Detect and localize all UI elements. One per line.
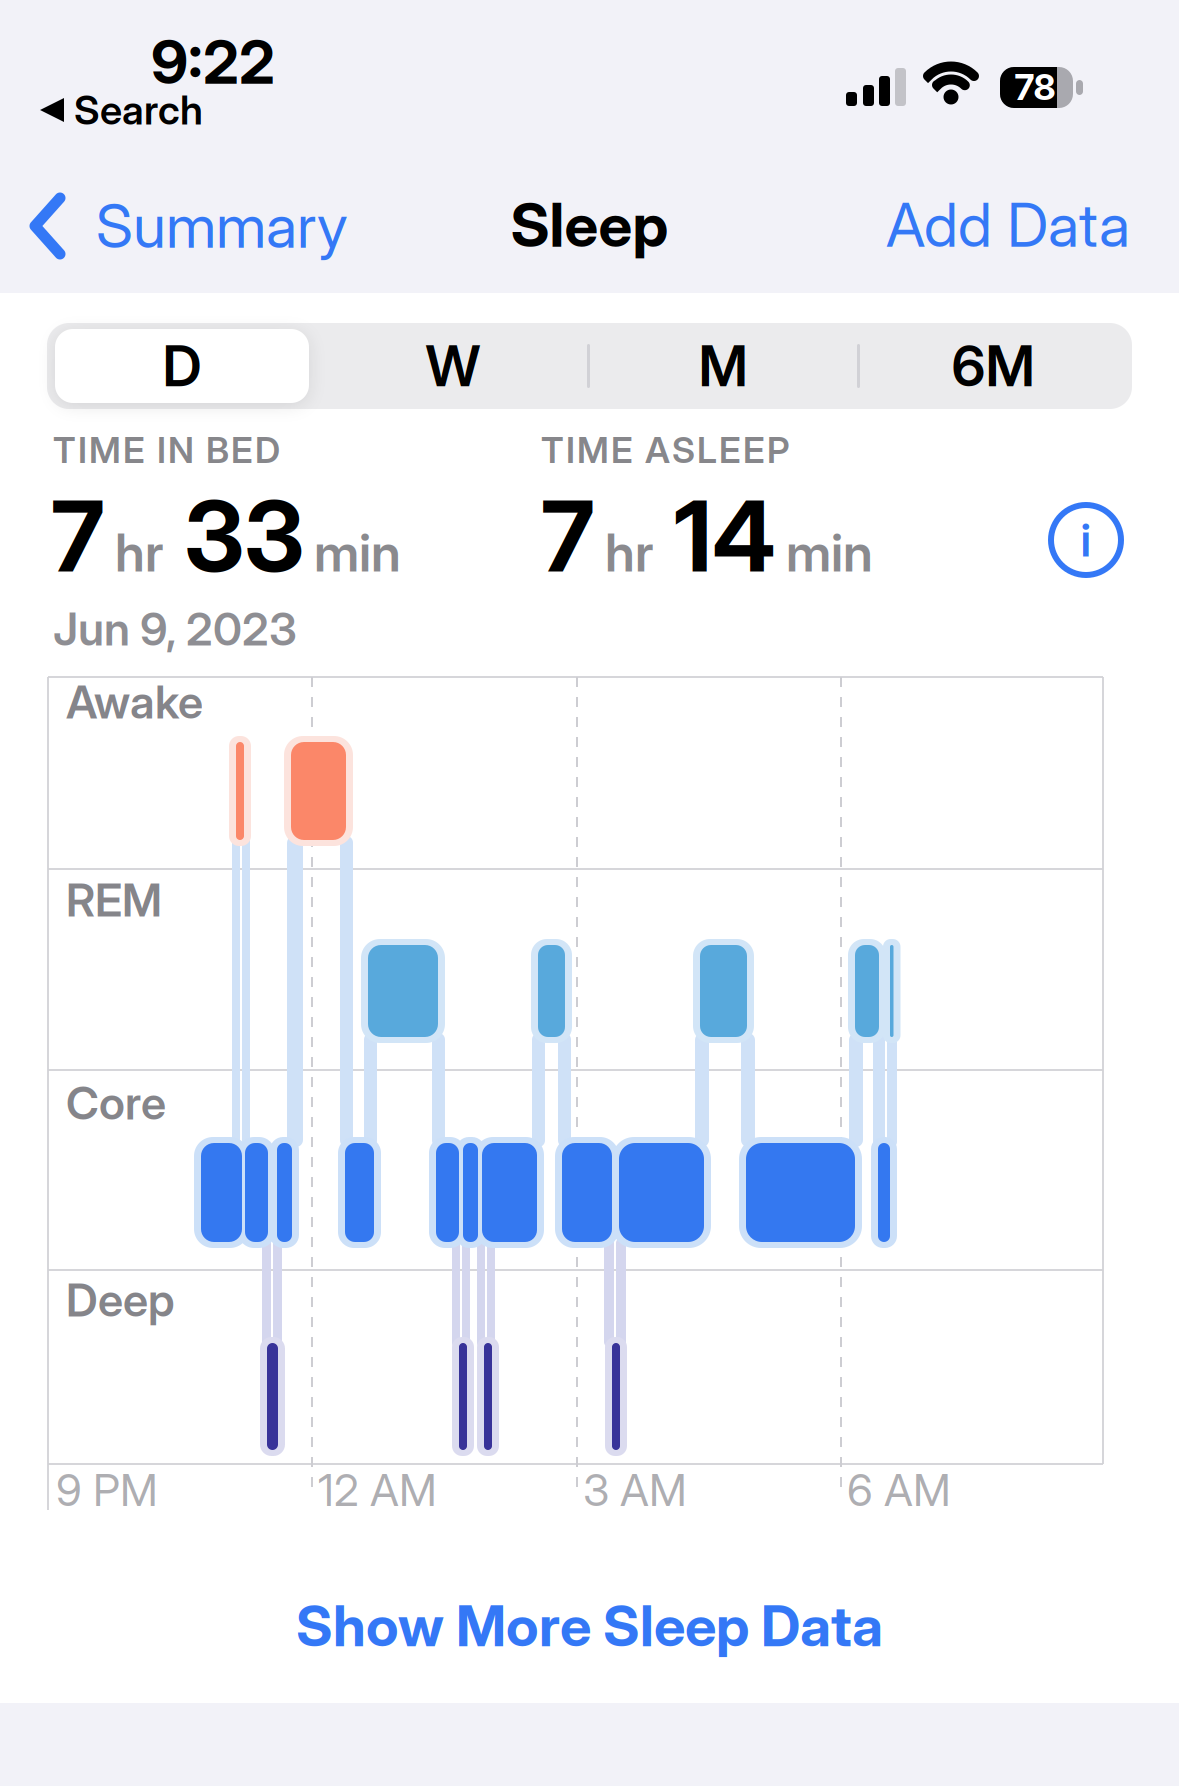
staticText: 9:22	[151, 27, 275, 97]
staticText: 12 AM	[318, 1464, 437, 1516]
staticText: Summary	[96, 191, 348, 261]
staticText: 3 AM	[583, 1464, 687, 1516]
staticText: i	[1080, 513, 1091, 567]
staticText: 33	[184, 479, 304, 593]
button[interactable]: Summary	[32, 191, 348, 261]
staticText: 14	[674, 479, 776, 593]
button[interactable]: Show More Sleep Data	[296, 1593, 883, 1659]
staticText: 7	[51, 479, 105, 593]
button[interactable]: 6M	[861, 327, 1125, 405]
staticText: Deep	[66, 1273, 175, 1327]
staticText: 9 PM	[56, 1464, 158, 1516]
staticText: min	[314, 522, 401, 583]
button[interactable]: D	[50, 327, 314, 405]
button[interactable]: i	[1048, 502, 1124, 578]
staticText: W	[425, 333, 480, 399]
staticText: D	[162, 333, 201, 399]
staticText: 78	[1014, 66, 1055, 108]
staticText: 7	[541, 479, 595, 593]
staticText: 6 AM	[847, 1464, 951, 1516]
staticText: Show More Sleep Data	[296, 1593, 883, 1659]
staticText: Awake	[66, 675, 203, 729]
staticText: M	[698, 333, 747, 399]
staticText: hr	[605, 522, 654, 583]
staticText: TIME ASLEEP	[541, 429, 790, 471]
staticText: Add Data	[886, 190, 1130, 260]
button[interactable]: W	[321, 327, 585, 405]
staticText: REM	[66, 873, 162, 927]
staticText: min	[786, 522, 873, 583]
staticText: Core	[66, 1076, 166, 1130]
staticText: Search	[74, 86, 203, 134]
staticText: hr	[115, 522, 164, 583]
button[interactable]: M	[591, 327, 855, 405]
staticText: Jun 9, 2023	[53, 602, 297, 656]
button[interactable]: Add Data	[0, 0, 1179, 1786]
staticText: TIME IN BED	[53, 429, 280, 471]
staticText: Sleep	[510, 190, 668, 260]
staticText: 6M	[951, 333, 1034, 399]
